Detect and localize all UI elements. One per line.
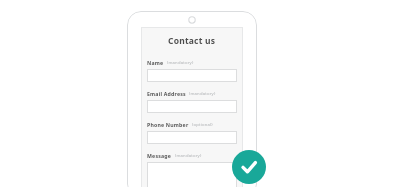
staticText: Email Address [147,90,186,97]
staticText: Message [147,152,172,159]
staticText: (mandatory) [167,60,194,66]
button[interactable] [147,162,237,187]
staticText: (mandatory) [189,91,216,97]
staticText: Name [147,59,164,66]
staticText: (optional) [192,122,213,128]
staticText: Contact us [168,35,216,47]
button[interactable]: Submitted successfully [232,150,266,184]
button[interactable] [147,100,237,113]
button[interactable] [147,131,237,144]
button[interactable] [147,69,237,82]
staticText: Phone Number [147,121,189,128]
staticText: (mandatory) [175,153,202,159]
